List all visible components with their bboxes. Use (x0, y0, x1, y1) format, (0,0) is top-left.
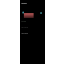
staticText: Discover (21, 2, 27, 5)
staticText: Evening update (21, 27, 28, 28)
staticText: Top stories (21, 20, 26, 22)
staticText: More headlines (21, 33, 28, 35)
